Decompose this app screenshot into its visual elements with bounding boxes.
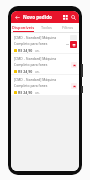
staticText: R$ 24,90: [18, 69, 33, 74]
button[interactable]: Voltar: [13, 13, 21, 21]
staticText: un.: [35, 49, 40, 53]
button[interactable]: Filtros: [57, 23, 79, 32]
staticText: Completo para fones: [14, 83, 48, 88]
button[interactable]: Adicionar ao carrinho: [71, 83, 77, 89]
staticText: Completo para fones: [14, 62, 48, 67]
staticText: [CMD - Standard] Máquina lavadora: [14, 35, 61, 40]
staticText: [CMD - Standard] Máquina lavadora: [14, 56, 61, 61]
staticText: [CMD - Standard] Máquina lavadora: [14, 77, 61, 82]
button[interactable]: [CMD - Standard] Máquina lavadora: [11, 54, 79, 74]
staticText: Filtros: [62, 25, 74, 30]
staticText: Completo para fones: [14, 41, 48, 46]
button[interactable]: [CMD - Standard] Máquina lavadora: [11, 33, 79, 53]
staticText: Todos: [41, 25, 52, 30]
button[interactable]: [CMD - Standard] Máquina lavadora: [11, 75, 79, 95]
staticText: R$ 24,90: [18, 48, 33, 53]
button[interactable]: Visualização em grade: [61, 13, 69, 21]
button[interactable]: Novo pedido: [23, 14, 61, 20]
button[interactable]: Buscar: [69, 13, 77, 21]
staticText: un.: [35, 91, 40, 95]
button[interactable]: Adicionar ao carrinho: [70, 41, 77, 48]
button[interactable]: Remover item: [65, 42, 70, 47]
button[interactable]: Disponíveis: [11, 23, 35, 32]
staticText: Disponíveis: [12, 25, 35, 30]
staticText: R$ 24,90: [18, 90, 33, 95]
button[interactable]: Adicionar ao carrinho: [71, 62, 77, 68]
staticText: un.: [35, 70, 40, 74]
button[interactable]: Todos: [35, 23, 57, 32]
